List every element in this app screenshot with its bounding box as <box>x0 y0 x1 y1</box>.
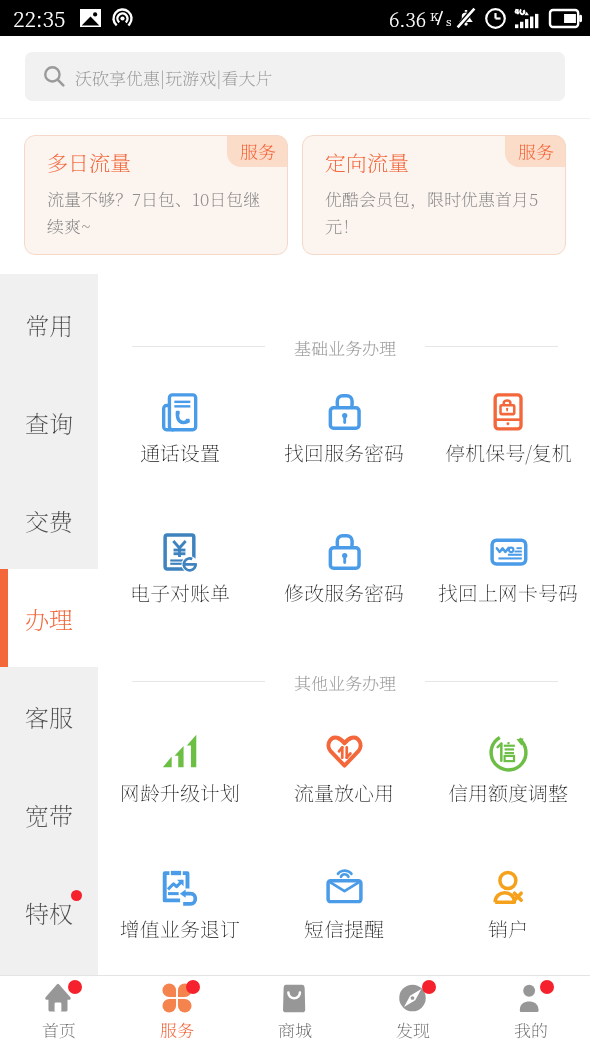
staticText: 网龄升级计划 <box>120 778 240 807</box>
button[interactable]: 停机保号/复机 <box>426 392 590 467</box>
staticText: 办理 <box>25 601 73 635</box>
staticText: 特权 <box>25 895 73 929</box>
button[interactable]: 网龄升级计划 <box>98 732 262 807</box>
button[interactable]: 交费 <box>0 471 98 569</box>
button[interactable]: 服务 <box>302 135 566 255</box>
staticText: 6.36 <box>389 5 427 32</box>
button[interactable]: 沃砍享优惠|玩游戏|看大片 <box>25 52 565 101</box>
staticText: 修改服务密码 <box>284 578 404 607</box>
staticText: 找回服务密码 <box>284 438 404 467</box>
staticText: 定向流量 <box>325 147 409 177</box>
button[interactable]: 增值业务退订 <box>98 868 262 943</box>
staticText: 流量不够？7日包、10日包继 续爽~ <box>47 186 261 237</box>
button[interactable]: Discover <box>354 976 472 1048</box>
staticText: 销户 <box>488 914 528 943</box>
button[interactable]: 流量放心用 <box>262 732 426 807</box>
staticText: 服务 <box>160 1017 194 1041</box>
staticText: 停机保号/复机 <box>445 438 572 467</box>
button[interactable]: 销户 <box>426 868 590 943</box>
button[interactable]: 找回服务密码 <box>262 392 426 467</box>
button[interactable]: Home <box>0 976 118 1048</box>
staticText: 客服 <box>25 699 73 733</box>
staticText: 22:35 <box>13 3 66 33</box>
button[interactable]: 找回上网卡号码 <box>426 532 590 607</box>
button[interactable]: 特权 <box>0 863 98 961</box>
staticText: 电子对账单 <box>130 578 230 607</box>
button[interactable]: 修改服务密码 <box>262 532 426 607</box>
button[interactable]: 电子对账单 <box>98 532 262 607</box>
staticText: s <box>446 12 452 29</box>
staticText: 服务 <box>518 138 554 164</box>
button[interactable]: Services <box>118 976 236 1048</box>
button[interactable]: 服务 <box>24 135 288 255</box>
staticText: 信用额度调整 <box>448 778 568 807</box>
staticText: 短信提醒 <box>304 914 384 943</box>
staticText: 流量放心用 <box>294 778 394 807</box>
staticText: K <box>430 7 439 24</box>
staticText: 服务 <box>240 138 276 164</box>
button[interactable]: Me <box>472 976 590 1048</box>
staticText: 找回上网卡号码 <box>438 578 578 607</box>
button[interactable]: 办理 <box>0 569 98 667</box>
staticText: 首页 <box>42 1017 76 1041</box>
staticText: 发现 <box>396 1017 430 1041</box>
staticText: 增值业务退订 <box>120 914 240 943</box>
button[interactable]: 信用额度调整 <box>426 732 590 807</box>
staticText: 优酷会员包，限时优惠首月5 元！ <box>325 186 539 237</box>
staticText: 沃砍享优惠|玩游戏|看大片 <box>75 65 273 89</box>
button[interactable]: 客服 <box>0 667 98 765</box>
button[interactable]: 查询 <box>0 373 98 471</box>
staticText: 宽带 <box>25 797 73 831</box>
staticText: 交费 <box>25 503 73 537</box>
button[interactable]: 常用 <box>0 275 98 373</box>
staticText: 其他业务办理 <box>294 670 396 692</box>
button[interactable]: 通话设置 <box>98 392 262 467</box>
staticText: 多日流量 <box>47 147 131 177</box>
staticText: 通话设置 <box>140 438 220 467</box>
button[interactable]: 短信提醒 <box>262 868 426 943</box>
staticText: 常用 <box>25 307 73 341</box>
staticText: 我的 <box>514 1017 548 1041</box>
staticText: 商城 <box>278 1017 312 1041</box>
button[interactable]: 宽带 <box>0 765 98 863</box>
button[interactable]: Store <box>236 976 354 1048</box>
staticText: 查询 <box>25 405 73 439</box>
staticText: 基础业务办理 <box>294 335 396 357</box>
